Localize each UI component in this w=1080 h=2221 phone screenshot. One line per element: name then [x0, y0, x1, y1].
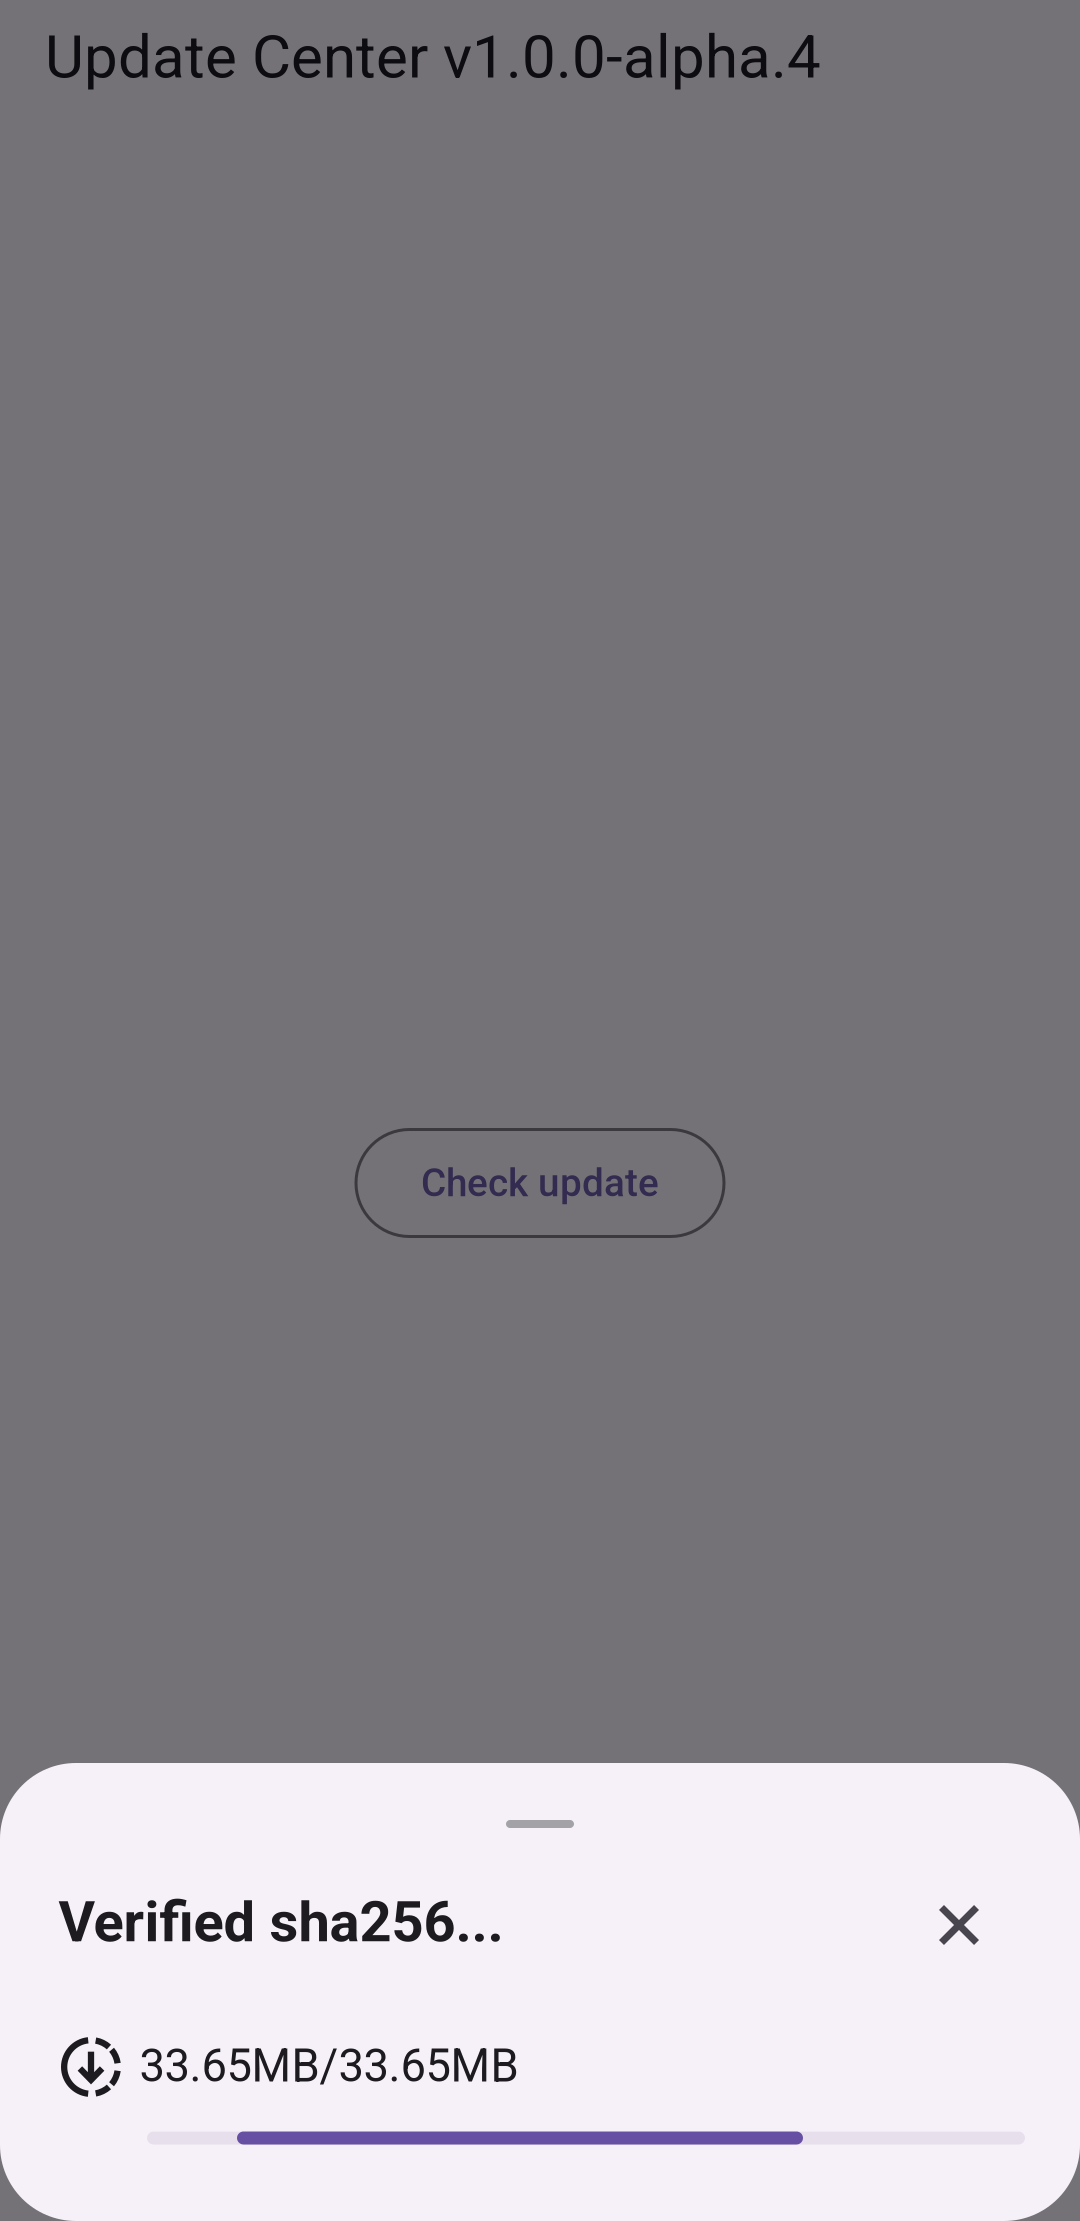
button[interactable]: Check update	[356, 1129, 724, 1236]
button[interactable]: Drag handle	[396, 1790, 684, 1858]
staticText: 33.65MB/33.65MB	[139, 2039, 518, 2092]
button[interactable]: Close	[914, 1880, 1004, 1970]
staticText: Check update	[421, 1160, 659, 1206]
staticText: Verified sha256...	[58, 1889, 503, 1955]
staticText: Update Center v1.0.0-alpha.4	[45, 22, 821, 92]
